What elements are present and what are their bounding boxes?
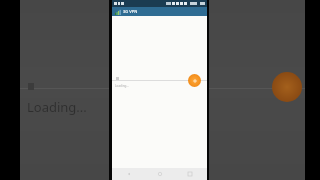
button[interactable]: Home	[155, 169, 165, 179]
staticText: Loading...	[115, 84, 129, 88]
button[interactable]: Add	[188, 74, 201, 87]
staticText: 3G VPN	[123, 9, 138, 14]
staticText: Loading...	[27, 98, 87, 116]
button[interactable]: App icon	[114, 8, 121, 15]
button[interactable]: Recents	[185, 169, 195, 179]
button[interactable]: Back	[124, 169, 134, 179]
